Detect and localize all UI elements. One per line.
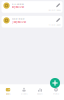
staticText: Profile: [53, 92, 59, 95]
button[interactable]: Clients: [16, 88, 32, 95]
button[interactable]: Elle Abiding: [1, 1, 62, 13]
button[interactable]: Debts: [0, 88, 16, 95]
button[interactable]: Profile: [48, 88, 64, 95]
staticText: 20 Oct 2024: [48, 9, 60, 11]
staticText: 1,008,800 usd: [12, 20, 27, 24]
staticText: Ashley Ridley: [12, 17, 25, 20]
staticText: 459,800 usd: [12, 5, 25, 9]
staticText: Elle Abiding: [12, 2, 24, 5]
button[interactable]: Edit: [56, 3, 60, 7]
button[interactable]: Edit: [56, 18, 60, 22]
staticText: Report: [37, 92, 43, 95]
button[interactable]: Ashley Ridley: [1, 16, 62, 28]
button[interactable]: Report: [32, 88, 48, 95]
staticText: 11 Oct 2024: [48, 23, 60, 26]
staticText: Debts: [5, 92, 10, 95]
staticText: Clients: [20, 92, 27, 95]
button[interactable]: Add debt: [50, 78, 60, 88]
